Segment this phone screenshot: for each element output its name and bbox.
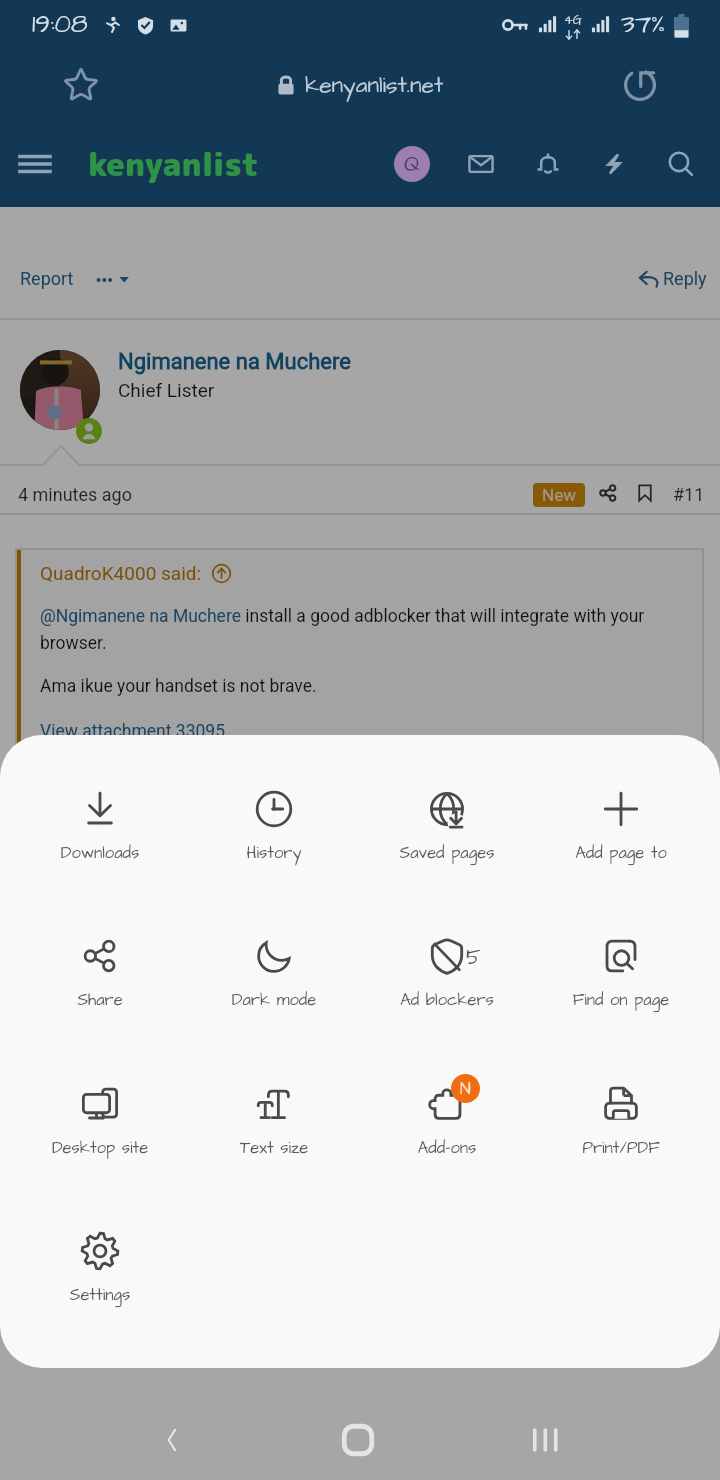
- staticText: kenyanlist: [88, 142, 259, 187]
- button[interactable]: Account: [394, 146, 430, 182]
- staticText: Downloads: [20, 842, 180, 865]
- button[interactable]: N: [367, 1082, 527, 1194]
- staticText: History: [194, 842, 354, 865]
- button[interactable]: Bookmark: [62, 66, 100, 104]
- button[interactable]: Reload: [622, 67, 658, 103]
- staticText: N: [460, 1077, 471, 1101]
- staticText: 5: [466, 943, 481, 972]
- button[interactable]: Find on page: [541, 934, 701, 1046]
- staticText: 37%: [621, 5, 666, 43]
- staticText: Share: [20, 989, 180, 1012]
- button[interactable]: kenyanlist.net: [276, 69, 444, 101]
- staticText: Ngimanene na Muchere: [118, 349, 351, 375]
- staticText: Report: [20, 268, 74, 289]
- button[interactable]: kenyanlist: [88, 142, 259, 187]
- staticText: Ad blockers: [367, 989, 527, 1012]
- staticText: QuadroK4000 said:: [40, 562, 202, 584]
- button[interactable]: Alerts: [531, 147, 565, 181]
- staticText: Settings: [20, 1284, 180, 1307]
- staticText: Dark mode: [194, 989, 354, 1012]
- staticText: Chief Lister: [118, 379, 215, 401]
- button[interactable]: Add page to: [541, 787, 701, 899]
- button[interactable]: Desktop site: [20, 1082, 180, 1194]
- staticText: Q: [404, 149, 420, 180]
- staticText: View attachment 33095: [40, 721, 225, 742]
- button[interactable]: Downloads: [20, 787, 180, 899]
- staticText: kenyanlist.net: [305, 69, 444, 101]
- staticText: Ama ikue your handset is not brave.: [40, 676, 317, 697]
- button[interactable]: 5: [367, 934, 527, 1046]
- staticText: Text size: [194, 1137, 354, 1160]
- staticText: 4 minutes ago: [18, 484, 132, 505]
- staticText: #11: [673, 484, 705, 505]
- staticText: Desktop site: [20, 1137, 180, 1160]
- staticText: Add page to: [541, 842, 701, 865]
- button[interactable]: Search: [664, 147, 698, 181]
- staticText: Find on page: [541, 989, 701, 1012]
- button[interactable]: Saved pages: [367, 787, 527, 899]
- button[interactable]: Inbox: [464, 147, 498, 181]
- staticText: Add-ons: [367, 1137, 527, 1160]
- button[interactable]: Dark mode: [194, 934, 354, 1046]
- staticText: 19:08: [32, 6, 88, 42]
- button[interactable]: Share: [20, 934, 180, 1046]
- button[interactable]: Home: [296, 1400, 420, 1480]
- staticText: 4G: [564, 11, 582, 29]
- button[interactable]: Text size: [194, 1082, 354, 1194]
- staticText: @Ngimanene na Muchere install a good adb…: [40, 606, 660, 654]
- button[interactable]: What's new: [597, 147, 631, 181]
- button[interactable]: Menu: [14, 143, 56, 185]
- button[interactable]: Settings: [20, 1229, 180, 1341]
- staticText: Saved pages: [367, 842, 527, 865]
- button[interactable]: History: [194, 787, 354, 899]
- button[interactable]: Back: [110, 1400, 234, 1480]
- button[interactable]: Print/PDF: [541, 1082, 701, 1194]
- staticText: Print/PDF: [541, 1137, 701, 1160]
- staticText: New: [542, 485, 576, 505]
- staticText: Reply: [663, 268, 707, 289]
- button[interactable]: Recents: [483, 1400, 607, 1480]
